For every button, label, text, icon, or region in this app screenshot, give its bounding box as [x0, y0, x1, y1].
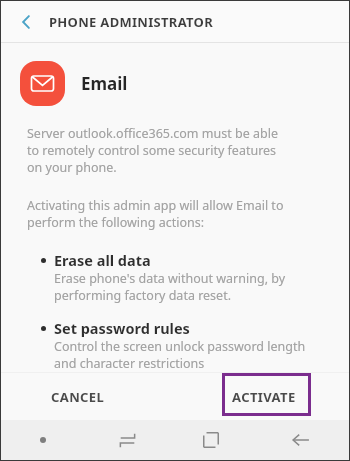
staticText: Control the screen unlock password lengt…: [54, 338, 306, 355]
staticText: and character restrictions: [54, 355, 205, 372]
button[interactable]: Home: [169, 420, 253, 460]
staticText: Erase all data: [54, 250, 151, 270]
button[interactable]: Recent apps: [85, 420, 169, 460]
button[interactable]: ACTIVATE: [218, 379, 310, 415]
staticText: Activating this admin app will allow Ema…: [27, 197, 284, 214]
staticText: to remotely control some security featur…: [27, 142, 277, 159]
staticText: Email: [81, 72, 128, 95]
staticText: Erase phone's data without warning, by: [54, 270, 286, 287]
staticText: on your phone.: [27, 159, 117, 176]
button[interactable]: CANCEL: [37, 379, 119, 415]
staticText: PHONE ADMINISTRATOR: [49, 13, 214, 31]
staticText: perform the following actions:: [27, 214, 205, 231]
staticText: Set password rules: [54, 318, 190, 338]
staticText: performing factory data reset.: [54, 287, 232, 304]
staticText: Server outlook.office365.com must be abl…: [27, 125, 278, 142]
button[interactable]: Back: [253, 420, 349, 460]
staticText: ACTIVATE: [232, 388, 296, 406]
staticText: CANCEL: [51, 388, 105, 406]
button[interactable]: Back: [9, 5, 43, 39]
